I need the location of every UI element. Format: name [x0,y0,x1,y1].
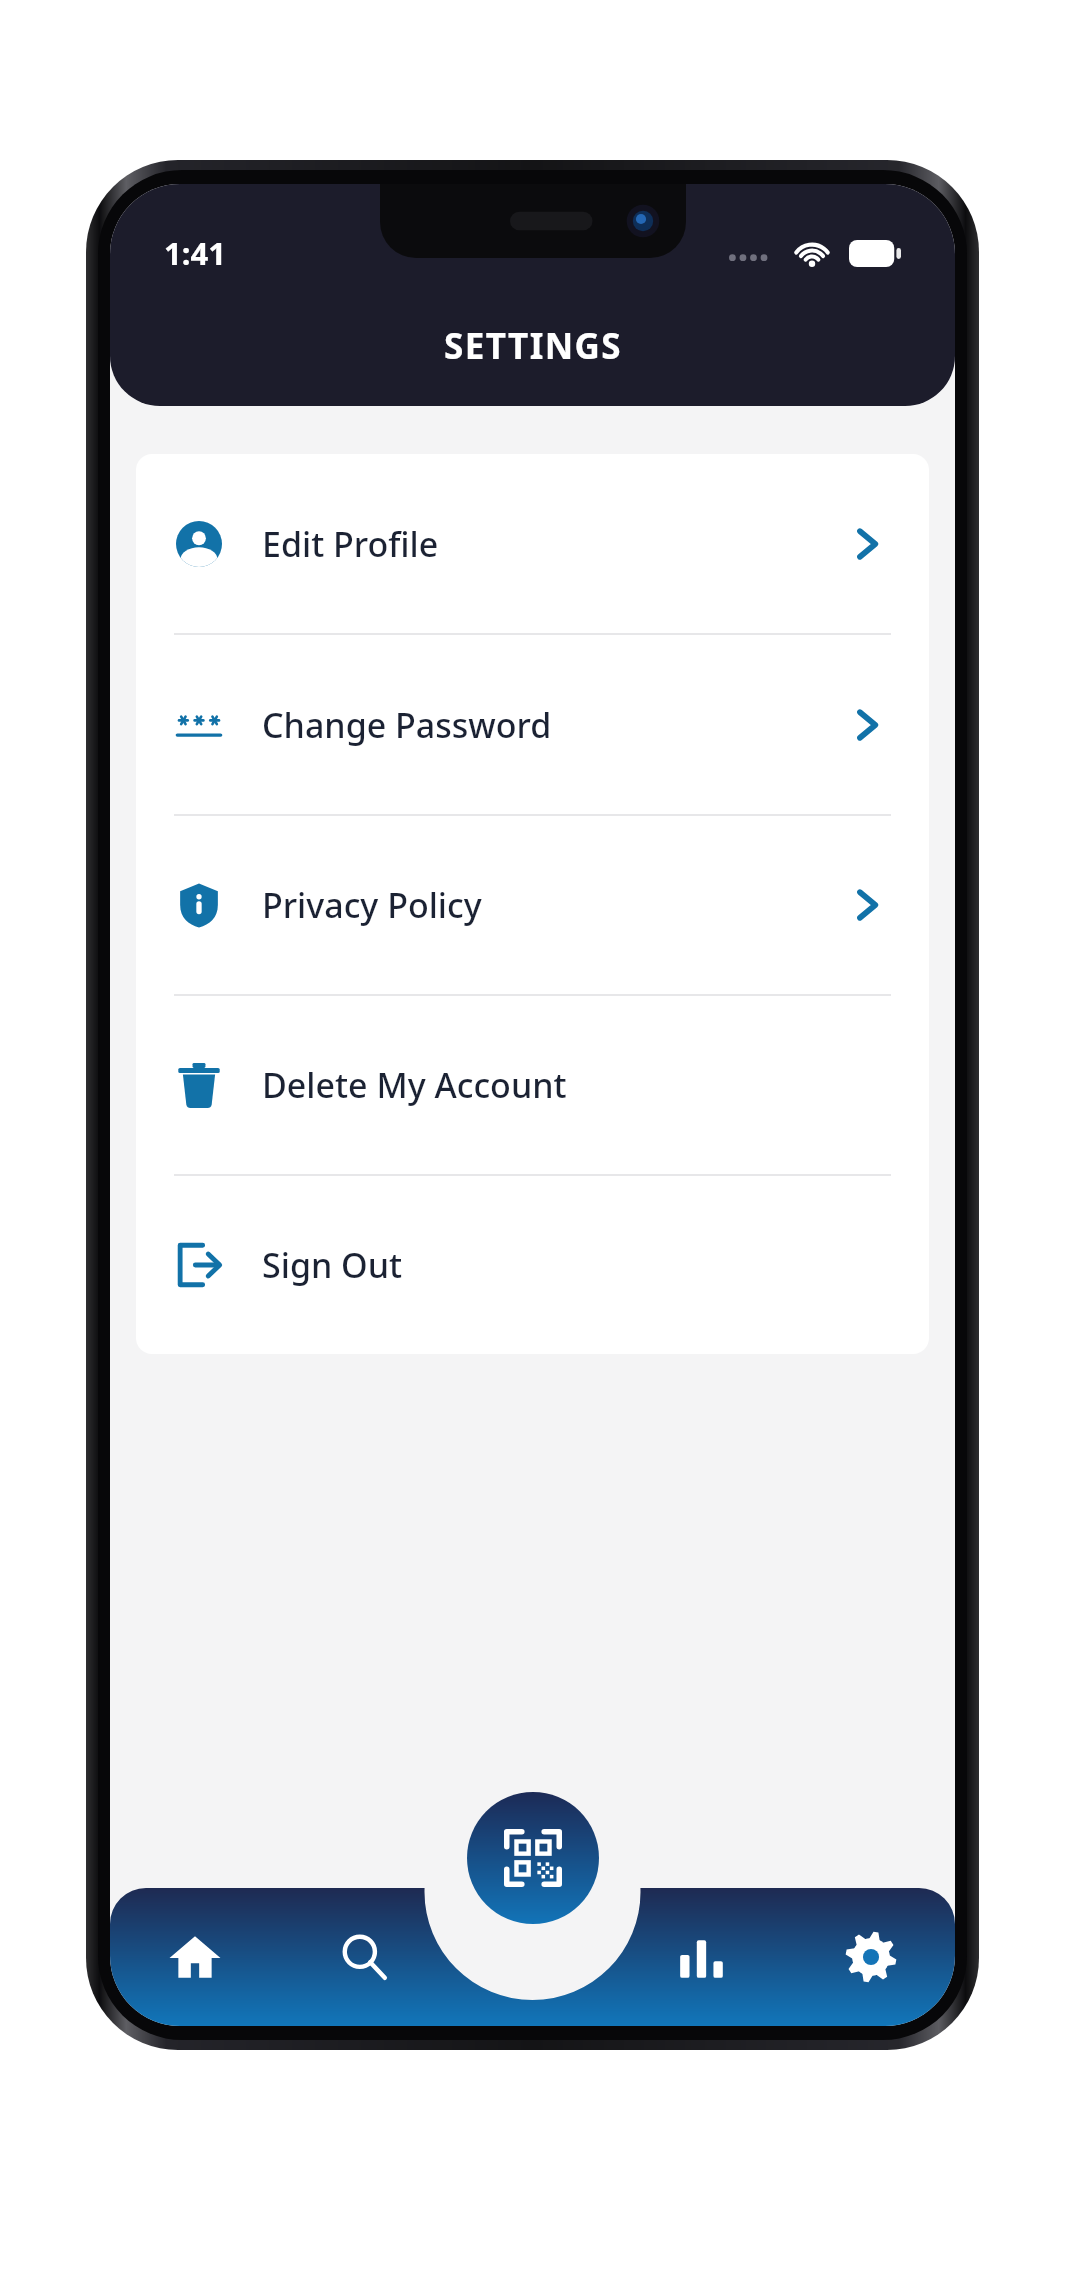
staticText: Privacy Policy [262,882,482,928]
staticText: Delete My Account [262,1062,567,1108]
staticText: Change Password [262,702,552,748]
button[interactable]: Search [279,1888,448,2026]
button[interactable]: Edit Profile [136,454,929,633]
staticText: Sign Out [262,1242,403,1288]
staticText: SETTINGS [444,322,622,370]
button[interactable]: Statistics [617,1888,786,2026]
button[interactable]: Settings [786,1888,955,2026]
staticText: 1:41 [164,232,226,274]
button[interactable]: Sign Out [136,1176,929,1354]
button[interactable]: Delete My Account [136,996,929,1174]
button[interactable]: Privacy Policy [136,816,929,994]
staticText: Edit Profile [262,521,439,567]
button[interactable]: Scan QR code [467,1792,599,1924]
button[interactable]: Home [110,1888,279,2026]
button[interactable]: Change Password [136,635,929,814]
